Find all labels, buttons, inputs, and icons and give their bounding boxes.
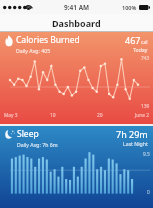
staticText: Daily Avg: 7h 6m bbox=[17, 141, 58, 148]
staticText: 100% bbox=[122, 4, 137, 11]
staticText: 9:41 AM bbox=[64, 3, 90, 12]
staticText: 7h 29m bbox=[116, 128, 148, 140]
staticText: Last Night bbox=[123, 140, 148, 147]
staticText: 467 bbox=[125, 34, 141, 46]
staticText: cal bbox=[141, 39, 148, 46]
staticText: Today bbox=[133, 46, 148, 53]
staticText: Sleep bbox=[17, 128, 39, 140]
button[interactable]: Dashboard bbox=[0, 14, 153, 32]
staticText: 743 bbox=[141, 55, 150, 62]
staticText: 0 bbox=[147, 189, 150, 196]
staticText: June 2 bbox=[135, 112, 149, 119]
button[interactable]: Sleep bbox=[0, 126, 153, 208]
staticText: May 3 bbox=[4, 112, 18, 119]
button[interactable]: Calories Burned bbox=[0, 32, 153, 124]
staticText: 10 bbox=[50, 112, 56, 119]
staticText: 139 bbox=[141, 103, 150, 110]
staticText: 20 bbox=[97, 112, 103, 119]
staticText: Dashboard bbox=[52, 17, 101, 29]
staticText: Daily Avg: 405 bbox=[16, 47, 51, 54]
staticText: Calories Burned bbox=[16, 34, 80, 46]
staticText: 9.5 bbox=[143, 151, 150, 158]
